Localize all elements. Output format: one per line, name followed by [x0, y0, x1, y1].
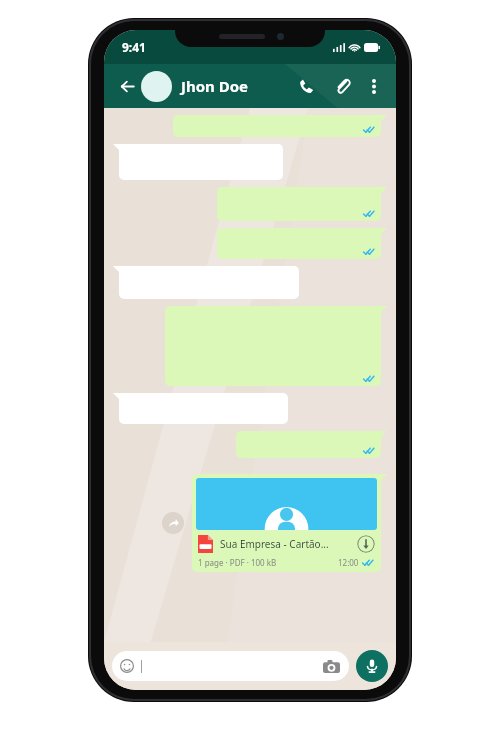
- button[interactable]: More options: [362, 74, 386, 98]
- button[interactable]: Download: [357, 535, 375, 553]
- button[interactable]: Back: [114, 73, 140, 99]
- button[interactable]: [217, 187, 387, 221]
- button[interactable]: Camera: [321, 656, 341, 676]
- button[interactable]: Camera: [112, 651, 349, 681]
- button[interactable]: [165, 306, 387, 386]
- button[interactable]: [236, 431, 387, 458]
- button[interactable]: Sua Empresa - Cartão...: [192, 474, 387, 572]
- button[interactable]: [113, 144, 283, 180]
- button[interactable]: Attach: [328, 72, 356, 100]
- button[interactable]: [217, 228, 387, 259]
- staticText: 9:41: [122, 39, 146, 55]
- button[interactable]: [113, 393, 288, 424]
- button[interactable]: Forward: [162, 512, 184, 534]
- button[interactable]: [113, 266, 299, 299]
- staticText: 1 page · PDF · 100 kB: [198, 557, 277, 568]
- button[interactable]: Jhon Doe: [181, 76, 292, 96]
- staticText: 12:00: [338, 557, 359, 568]
- staticText: Jhon Doe: [181, 76, 249, 96]
- staticText: Sua Empresa - Cartão...: [220, 537, 351, 551]
- button[interactable]: [173, 115, 387, 137]
- button[interactable]: Call: [292, 72, 320, 100]
- button[interactable]: Voice message: [356, 650, 388, 682]
- button[interactable]: Contact photo: [141, 71, 172, 102]
